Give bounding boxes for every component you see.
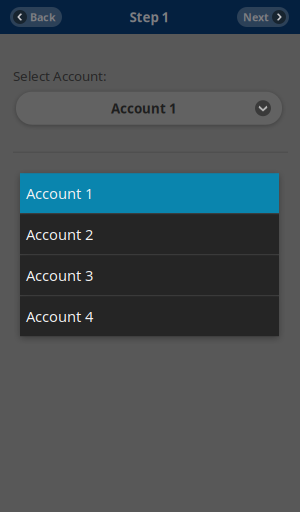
button[interactable]: Account 1 (20, 173, 279, 213)
staticText: Step 1 (129, 8, 169, 26)
staticText: Account 3 (26, 265, 93, 285)
button[interactable]: Next (237, 7, 289, 27)
staticText: Back (30, 10, 56, 24)
staticText: Next (243, 10, 269, 24)
button[interactable]: Back (10, 7, 62, 27)
staticText: Select Account: (13, 67, 107, 85)
staticText: Account 2 (26, 224, 93, 244)
button[interactable]: Account 3 (20, 255, 279, 295)
staticText: Account 1 (111, 99, 177, 117)
button[interactable]: Account 2 (20, 214, 279, 254)
button[interactable]: Account 4 (20, 296, 279, 336)
button[interactable]: Account 1 (16, 92, 282, 125)
staticText: Account 1 (26, 183, 93, 203)
staticText: Account 4 (26, 306, 93, 326)
